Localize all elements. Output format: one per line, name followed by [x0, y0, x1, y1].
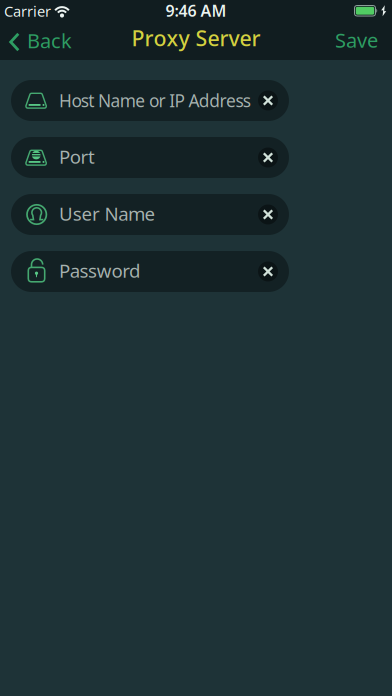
button[interactable]: Clear text: [258, 90, 278, 110]
button[interactable]: Save: [335, 29, 392, 55]
button[interactable]: Clear text: [258, 204, 278, 224]
staticText: Password: [59, 258, 140, 283]
button[interactable]: Port: [11, 137, 289, 178]
staticText: Port: [59, 144, 95, 169]
staticText: Carrier: [4, 1, 51, 21]
staticText: Host Name or IP Address: [59, 89, 251, 112]
button[interactable]: Back: [0, 29, 72, 55]
button[interactable]: User Name: [11, 194, 289, 235]
staticText: User Name: [59, 201, 156, 226]
button[interactable]: Clear text: [258, 147, 278, 167]
staticText: Back: [27, 27, 72, 54]
staticText: 9:46 AM: [165, 0, 226, 21]
staticText: Proxy Server: [131, 24, 260, 52]
button[interactable]: Clear text: [258, 261, 278, 281]
button[interactable]: Password: [11, 251, 289, 292]
button[interactable]: Host Name or IP Address: [11, 80, 289, 121]
staticText: Save: [335, 27, 378, 53]
